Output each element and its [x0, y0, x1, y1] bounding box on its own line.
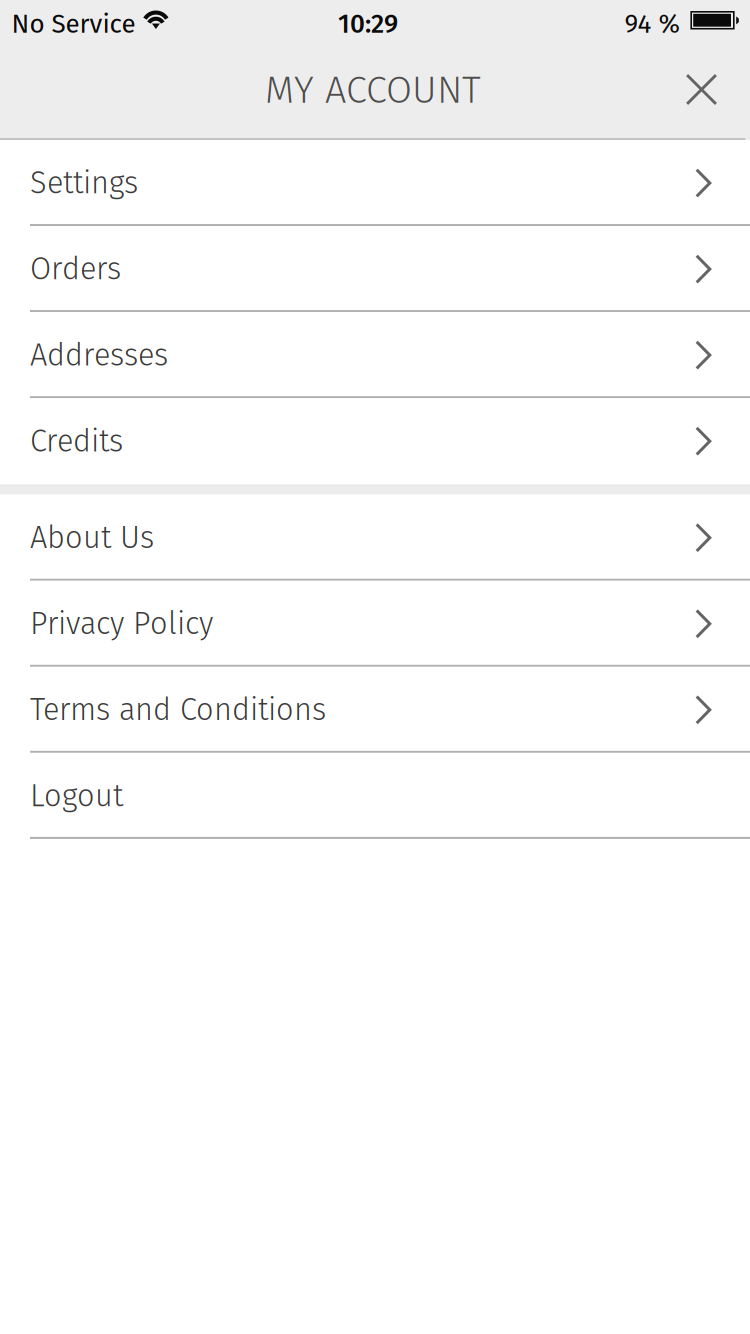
- staticText: 94 %: [624, 8, 679, 40]
- staticText: No Service: [11, 8, 135, 40]
- staticText: Credits: [30, 423, 123, 460]
- staticText: Addresses: [30, 337, 168, 373]
- staticText: Privacy Policy: [30, 605, 213, 642]
- button[interactable]: Close: [657, 48, 745, 131]
- staticText: Orders: [30, 251, 121, 287]
- button[interactable]: Terms and Conditions: [0, 667, 750, 753]
- button[interactable]: Addresses: [0, 312, 750, 398]
- button[interactable]: About Us: [0, 495, 750, 581]
- button[interactable]: Credits: [0, 398, 750, 484]
- staticText: MY ACCOUNT: [265, 67, 481, 113]
- button[interactable]: Settings: [0, 140, 750, 226]
- staticText: Terms and Conditions: [30, 691, 326, 728]
- staticText: Logout: [30, 777, 123, 814]
- button[interactable]: Logout: [0, 753, 750, 839]
- button[interactable]: Orders: [0, 226, 750, 312]
- staticText: About Us: [30, 519, 154, 556]
- staticText: Settings: [30, 165, 138, 201]
- button[interactable]: Privacy Policy: [0, 581, 750, 667]
- staticText: 10:29: [338, 8, 398, 40]
